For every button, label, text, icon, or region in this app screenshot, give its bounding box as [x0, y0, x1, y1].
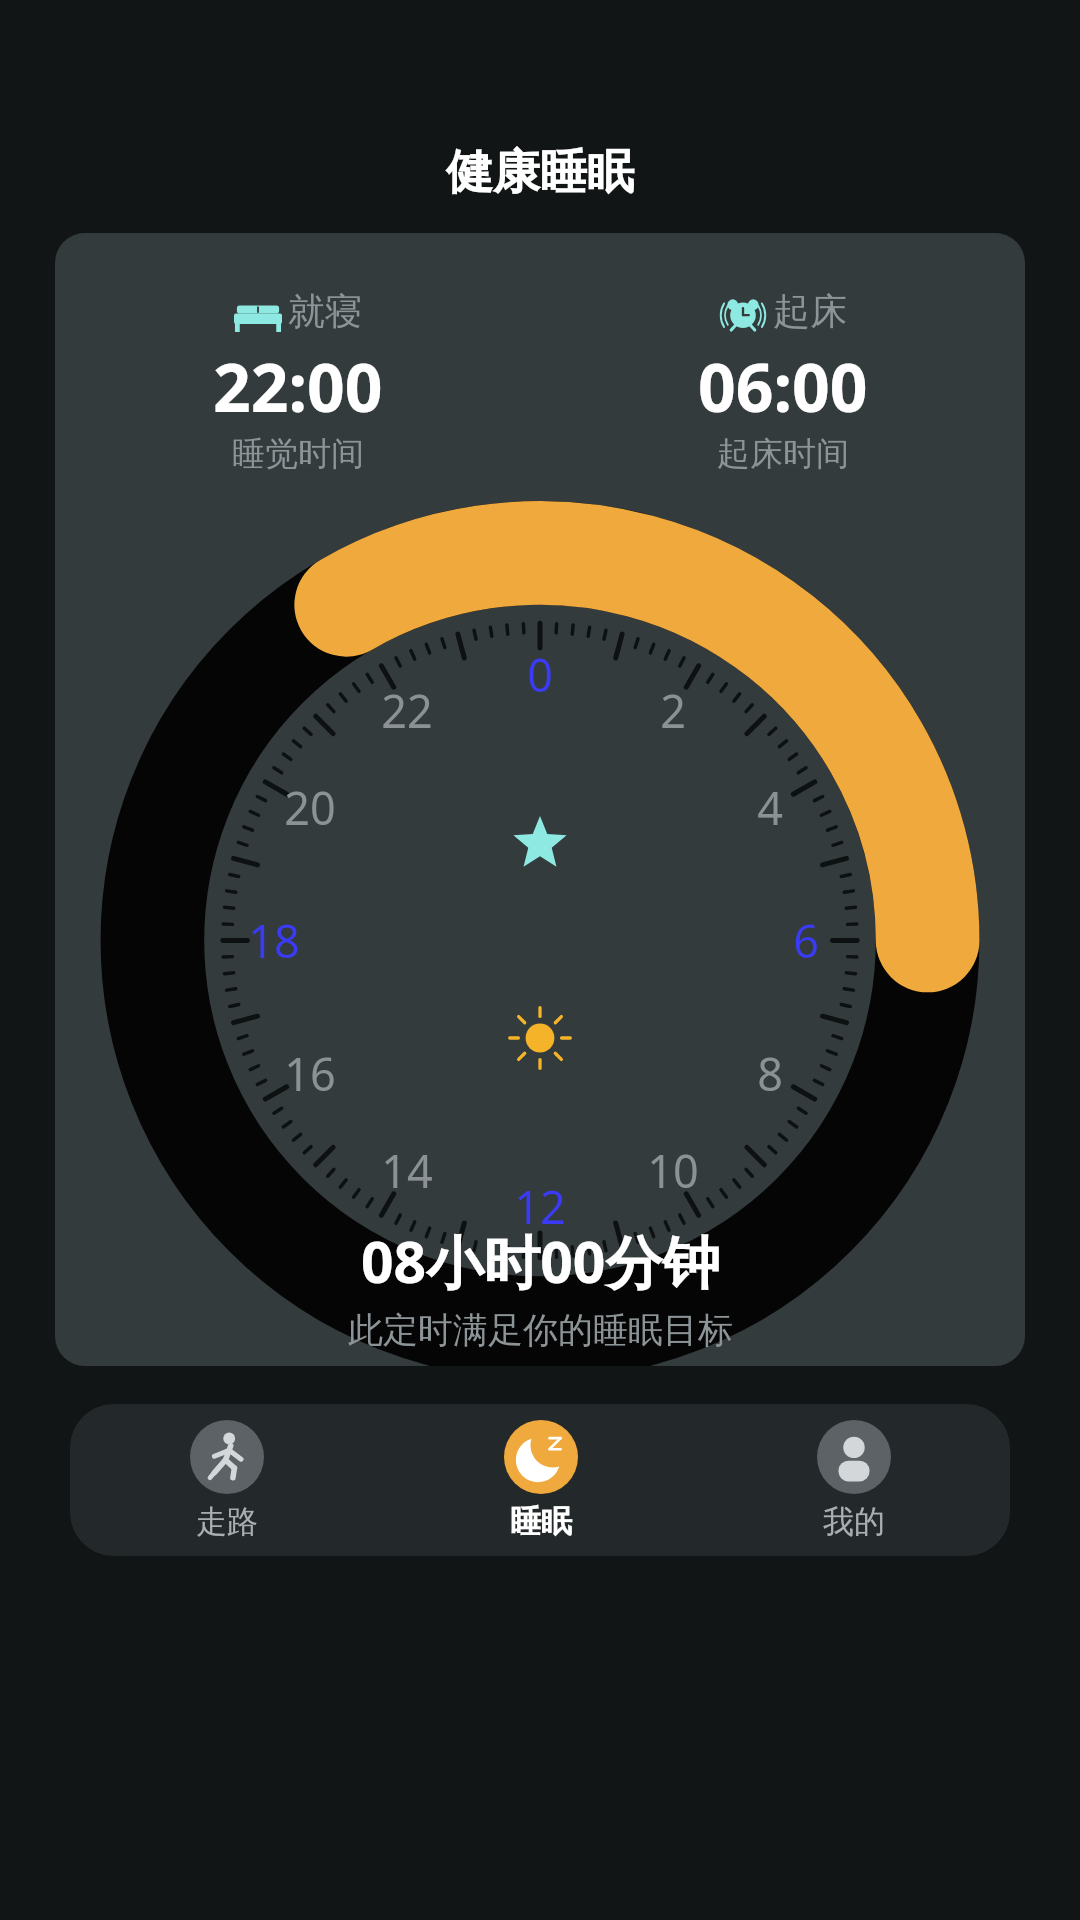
staticText: 08小时00分钟	[361, 1222, 720, 1300]
staticText: 10	[647, 1140, 699, 1201]
staticText: 18	[248, 910, 300, 971]
staticText: 16	[284, 1043, 336, 1104]
staticText: 此定时满足你的睡眠目标	[348, 1308, 733, 1352]
staticText: 睡眠	[510, 1502, 572, 1541]
button[interactable]: 起床	[540, 288, 1025, 475]
staticText: 22	[381, 680, 433, 741]
button[interactable]: 我的	[697, 1404, 1010, 1556]
staticText: 22:00	[213, 341, 383, 431]
staticText: 起床时间	[717, 433, 849, 475]
staticText: 起床	[773, 288, 847, 335]
button[interactable]: Sleep schedule dial	[97, 515, 983, 1366]
staticText: 14	[381, 1140, 433, 1201]
staticText: 20	[284, 777, 336, 838]
staticText: 4	[757, 777, 783, 838]
staticText: 睡觉时间	[232, 433, 364, 475]
staticText: 6	[793, 910, 819, 971]
staticText: 走路	[196, 1502, 258, 1541]
staticText: 0	[527, 644, 553, 705]
staticText: 8	[757, 1043, 783, 1104]
staticText: 就寝	[288, 288, 362, 335]
staticText: 健康睡眠	[446, 143, 634, 202]
staticText: 2	[660, 680, 686, 741]
staticText: 我的	[823, 1502, 885, 1541]
staticText: 12	[514, 1176, 566, 1237]
staticText: 06:00	[698, 341, 868, 431]
button[interactable]: 就寝	[55, 288, 540, 475]
button[interactable]: 走路	[70, 1404, 384, 1556]
button[interactable]: 睡眠	[384, 1404, 697, 1556]
